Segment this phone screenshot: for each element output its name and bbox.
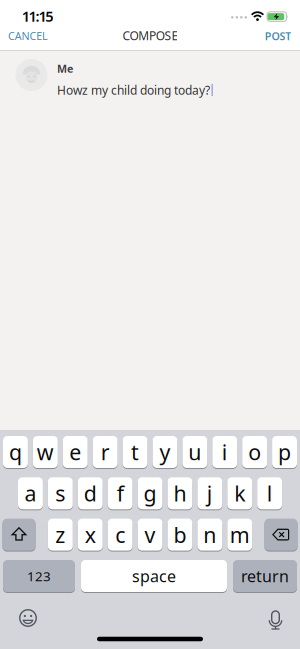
staticText: POST bbox=[265, 29, 291, 43]
staticText: COMPOSE bbox=[123, 27, 178, 43]
button[interactable]: a bbox=[18, 477, 43, 509]
staticText: CANCEL bbox=[8, 29, 48, 43]
staticText: z bbox=[55, 520, 65, 549]
staticText: c bbox=[115, 520, 125, 549]
button[interactable]: t bbox=[123, 436, 147, 468]
staticText: y bbox=[159, 438, 170, 466]
button[interactable]: k bbox=[227, 477, 252, 509]
staticText: e bbox=[69, 438, 81, 466]
button[interactable]: i bbox=[212, 436, 237, 468]
staticText: space bbox=[132, 565, 176, 587]
staticText: v bbox=[144, 520, 155, 549]
staticText: Howz my child doing today? bbox=[57, 82, 210, 98]
staticText: b bbox=[173, 520, 186, 549]
button[interactable]: f bbox=[108, 477, 133, 509]
staticText: Me bbox=[57, 61, 73, 76]
staticText: g bbox=[143, 479, 156, 507]
staticText: o bbox=[248, 438, 261, 466]
button[interactable]: m bbox=[227, 519, 252, 551]
button[interactable]: space bbox=[81, 560, 227, 592]
staticText: return bbox=[241, 565, 289, 587]
staticText: 11:15 bbox=[22, 6, 53, 26]
button[interactable]: u bbox=[182, 436, 207, 468]
button[interactable]: d bbox=[78, 477, 103, 509]
button[interactable]: h bbox=[167, 477, 192, 509]
button[interactable]: Shift bbox=[2, 519, 35, 551]
button[interactable]: z bbox=[48, 519, 73, 551]
staticText: u bbox=[188, 438, 201, 466]
button[interactable]: Dictate bbox=[265, 608, 285, 630]
button[interactable]: w bbox=[33, 436, 58, 468]
button[interactable]: POST bbox=[265, 29, 291, 43]
button[interactable]: q bbox=[3, 436, 28, 468]
staticText: w bbox=[37, 438, 54, 466]
button[interactable]: 123 bbox=[3, 560, 75, 592]
staticText: a bbox=[24, 479, 36, 507]
staticText: t bbox=[131, 438, 139, 466]
button[interactable]: s bbox=[48, 477, 73, 509]
button[interactable]: y bbox=[152, 436, 177, 468]
button[interactable]: x bbox=[78, 519, 103, 551]
button[interactable]: CANCEL bbox=[8, 29, 48, 43]
staticText: k bbox=[234, 479, 245, 507]
staticText: f bbox=[117, 479, 124, 507]
button[interactable]: j bbox=[197, 477, 222, 509]
staticText: l bbox=[267, 479, 273, 507]
staticText: h bbox=[173, 479, 186, 507]
button[interactable]: g bbox=[138, 477, 162, 509]
button[interactable]: v bbox=[138, 519, 162, 551]
button[interactable]: r bbox=[93, 436, 118, 468]
staticText: n bbox=[203, 520, 216, 549]
staticText: m bbox=[230, 520, 250, 549]
staticText: s bbox=[55, 479, 65, 507]
button[interactable]: c bbox=[108, 519, 133, 551]
staticText: p bbox=[278, 438, 291, 466]
button[interactable]: o bbox=[242, 436, 267, 468]
button[interactable]: p bbox=[272, 436, 297, 468]
staticText: 123 bbox=[27, 567, 51, 585]
button[interactable]: Delete bbox=[264, 519, 297, 551]
button[interactable]: Emoji bbox=[18, 608, 38, 628]
staticText: q bbox=[9, 438, 22, 466]
staticText: x bbox=[85, 520, 96, 549]
button[interactable]: l bbox=[257, 477, 282, 509]
staticText: d bbox=[84, 479, 97, 507]
button[interactable]: e bbox=[63, 436, 88, 468]
staticText: j bbox=[207, 479, 213, 507]
staticText: r bbox=[101, 438, 110, 466]
button[interactable]: b bbox=[167, 519, 192, 551]
staticText: i bbox=[222, 438, 228, 466]
button[interactable]: return bbox=[233, 560, 297, 592]
button[interactable]: n bbox=[197, 519, 222, 551]
